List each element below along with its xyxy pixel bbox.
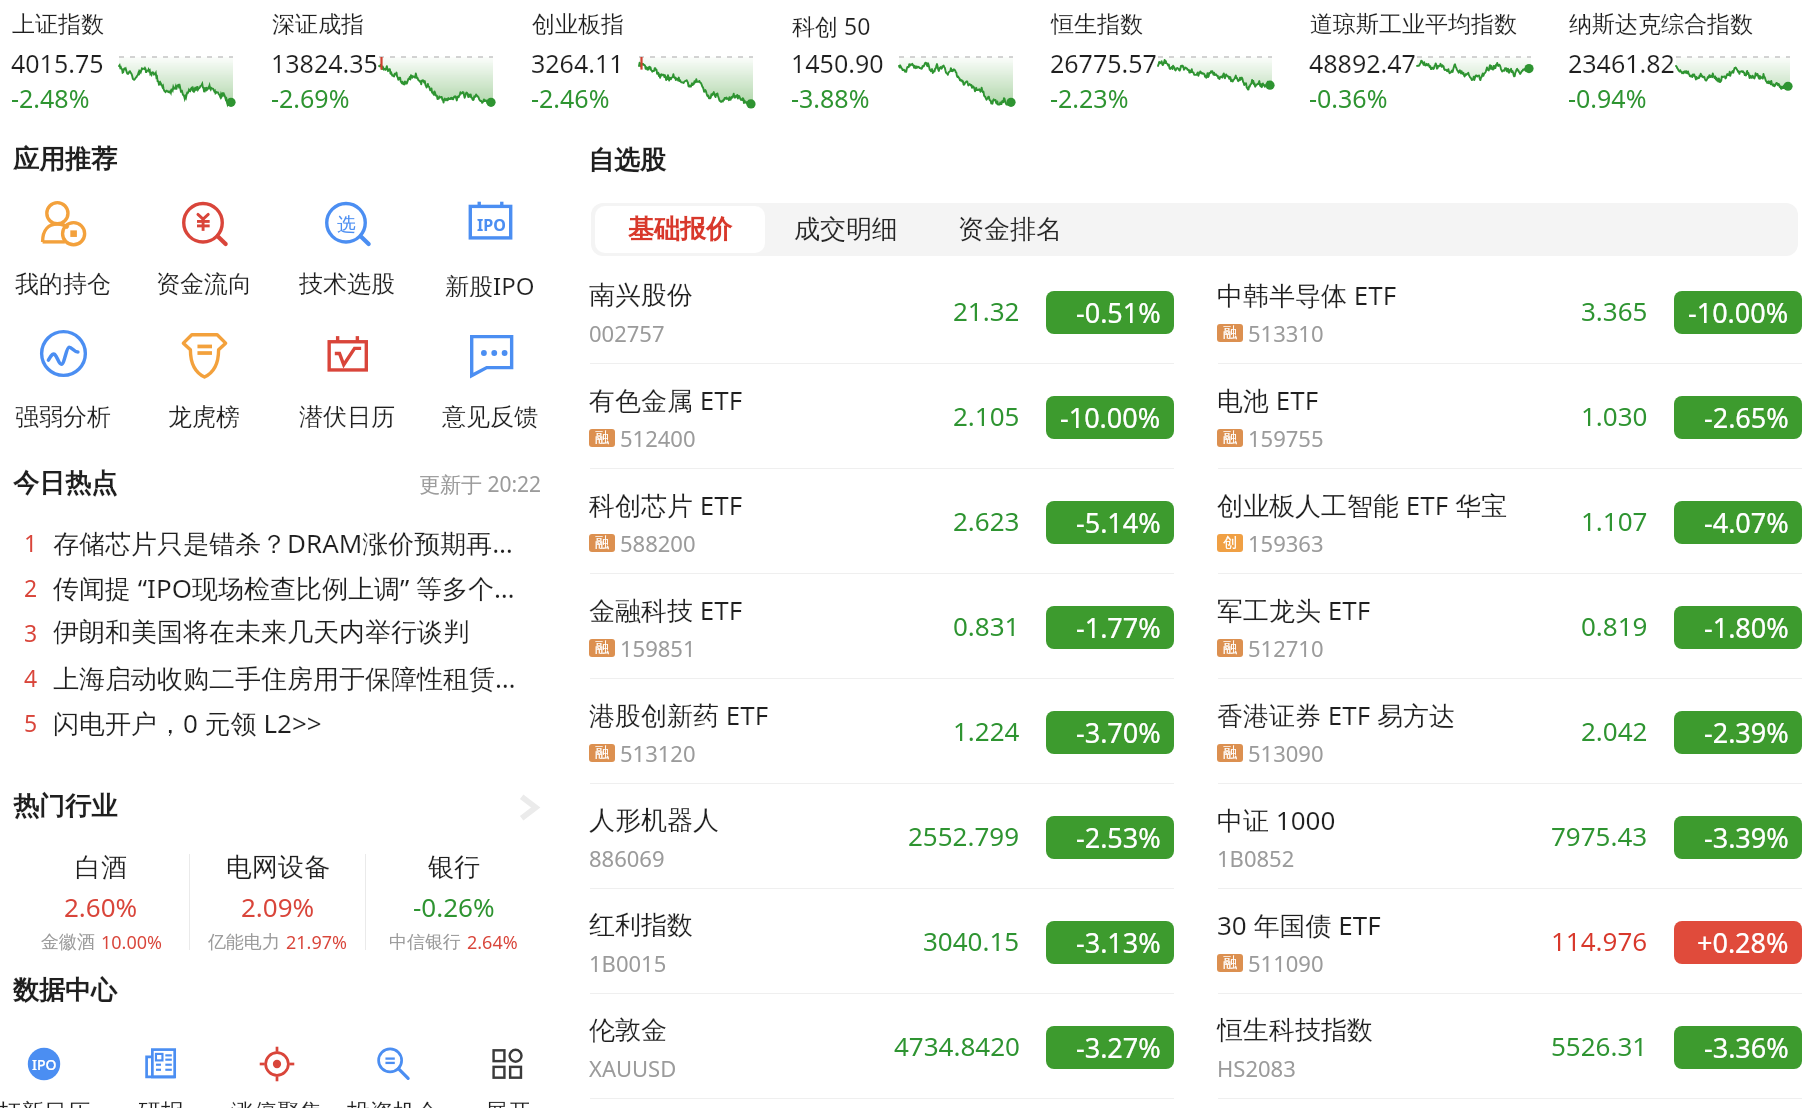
button[interactable]: 纳斯达克综合指数 — [1557, 0, 1816, 125]
staticText: 159755 — [1248, 423, 1324, 453]
button[interactable]: 人形机器人 — [560, 790, 1188, 895]
staticText: 3 — [24, 617, 38, 648]
staticText: 886069 — [589, 843, 665, 873]
button[interactable]: 4 — [0, 655, 560, 700]
button[interactable]: 白酒 — [13, 851, 189, 953]
staticText: 中证 1000 — [1217, 802, 1336, 838]
button[interactable]: 电网设备 — [190, 851, 365, 953]
button[interactable]: 恒生科技指数 — [1188, 1000, 1816, 1105]
button[interactable]: 强弱分析 — [0, 330, 133, 430]
button[interactable]: 科创芯片 ETF — [560, 475, 1188, 580]
button[interactable]: 有色金属 ETF — [560, 370, 1188, 475]
button[interactable]: 30 年国债 ETF — [1188, 895, 1816, 1000]
button[interactable]: 道琼斯工业平均指数 — [1298, 0, 1557, 125]
button[interactable]: 恒生指数 — [1039, 0, 1298, 125]
button[interactable]: IPO — [0, 1046, 100, 1108]
button[interactable]: IPO — [420, 197, 560, 297]
staticText: -2.39% — [1704, 714, 1789, 751]
staticText: 涨停聚集 — [231, 1098, 323, 1108]
button[interactable]: 成交明细 — [771, 206, 921, 253]
staticText: 融 — [595, 744, 609, 762]
staticText: 7975.43 — [1551, 818, 1648, 853]
button[interactable]: 涨停聚集 — [221, 1046, 333, 1108]
button[interactable]: 潜伏日历 — [277, 330, 417, 430]
staticText: 512710 — [1248, 633, 1324, 663]
button[interactable]: 热门行业 — [0, 789, 560, 833]
button[interactable]: 红利指数 — [560, 895, 1188, 1000]
staticText: 恒生指数 — [1051, 10, 1143, 39]
staticText: IPO — [477, 214, 506, 236]
staticText: 513310 — [1248, 318, 1324, 348]
button[interactable]: 基础报价 — [595, 206, 765, 253]
staticText: 道琼斯工业平均指数 — [1310, 10, 1517, 39]
button[interactable]: 资金排名 — [935, 206, 1085, 253]
button[interactable]: 金融科技 ETF — [560, 580, 1188, 685]
staticText: HS2083 — [1217, 1053, 1296, 1083]
button[interactable]: 选 — [277, 197, 417, 297]
staticText: 中信银行 — [389, 931, 461, 954]
staticText: 存储芯片只是错杀？DRAM涨价预期再… — [53, 525, 513, 561]
button[interactable]: 意见反馈 — [420, 330, 560, 430]
button[interactable]: 资金流向 — [134, 197, 274, 297]
staticText: 传闻提 “IPO现场检查比例上调” 等多个… — [53, 570, 515, 606]
staticText: 香港证券 ETF 易方达 — [1217, 697, 1455, 733]
staticText: 002757 — [589, 318, 665, 348]
staticText: 13824.35 — [271, 46, 378, 80]
button[interactable]: 1 — [0, 520, 560, 565]
staticText: +0.28% — [1697, 924, 1789, 961]
staticText: 0.819 — [1581, 608, 1648, 643]
staticText: 1.224 — [953, 713, 1020, 748]
staticText: 融 — [595, 534, 609, 552]
staticText: 融 — [1223, 954, 1237, 972]
staticText: 人形机器人 — [589, 804, 719, 837]
staticText: 513120 — [620, 738, 696, 768]
button[interactable]: 我的持仓 — [0, 197, 133, 297]
staticText: -0.94% — [1568, 81, 1647, 115]
staticText: XAUUSD — [589, 1053, 677, 1083]
staticText: -3.39% — [1704, 819, 1789, 856]
staticText: -2.65% — [1704, 399, 1789, 436]
button[interactable]: 军工龙头 ETF — [1188, 580, 1816, 685]
staticText: IPO — [32, 1055, 57, 1074]
button[interactable]: 中韩半导体 ETF — [1188, 265, 1816, 370]
button[interactable]: 2 — [0, 565, 560, 610]
button[interactable]: 伦敦金 — [560, 1000, 1188, 1105]
staticText: 恒生科技指数 — [1217, 1014, 1373, 1047]
button[interactable]: 港股创新药 ETF — [560, 685, 1188, 790]
button[interactable]: 创业板指 — [520, 0, 780, 125]
button[interactable]: 上证指数 — [0, 0, 260, 125]
staticText: 511090 — [1248, 948, 1324, 978]
staticText: 亿能电力 — [208, 931, 280, 954]
staticText: 科创 50 — [792, 10, 871, 41]
staticText: 融 — [595, 639, 609, 657]
button[interactable]: 展开 — [452, 1046, 564, 1108]
staticText: 2.09% — [241, 889, 315, 921]
staticText: 银行 — [428, 851, 480, 884]
staticText: 26775.57 — [1050, 46, 1157, 80]
staticText: 基础报价 — [628, 213, 732, 246]
button[interactable]: 中证 1000 — [1188, 790, 1816, 895]
button[interactable]: 香港证券 ETF 易方达 — [1188, 685, 1816, 790]
other: 更多 — [519, 795, 538, 820]
button[interactable]: 银行 — [366, 851, 541, 953]
staticText: -3.36% — [1704, 1029, 1789, 1066]
staticText: 资金流向 — [156, 269, 252, 297]
staticText: 金徽酒 — [41, 931, 95, 954]
button[interactable]: 龙虎榜 — [134, 330, 274, 430]
staticText: -2.48% — [11, 81, 90, 115]
button[interactable]: 3 — [0, 610, 560, 655]
staticText: 4 — [24, 662, 38, 693]
staticText: 今日热点 — [13, 467, 117, 500]
button[interactable]: 深证成指 — [260, 0, 520, 125]
button[interactable]: 5 — [0, 700, 560, 745]
button[interactable]: 南兴股份 — [560, 265, 1188, 370]
button[interactable]: 投资机会 — [337, 1046, 449, 1108]
button[interactable]: 科创 50 — [780, 0, 1039, 125]
button[interactable]: 电池 ETF — [1188, 370, 1816, 475]
staticText: -2.53% — [1076, 819, 1161, 856]
button[interactable]: 创业板人工智能 ETF 华宝 — [1188, 475, 1816, 580]
staticText: 军工龙头 ETF — [1217, 592, 1371, 628]
staticText: 港股创新药 ETF — [589, 697, 769, 733]
staticText: 创业板人工智能 ETF 华宝 — [1217, 487, 1507, 523]
button[interactable]: 研报 — [105, 1046, 217, 1108]
